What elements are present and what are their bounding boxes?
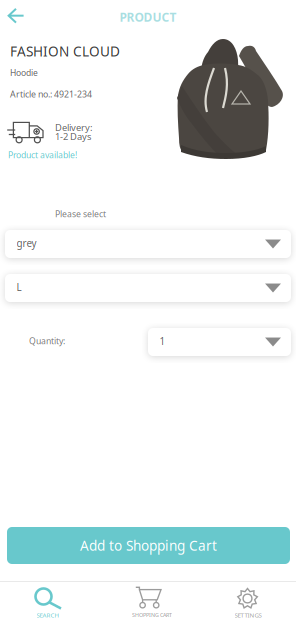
staticText: Please select xyxy=(55,208,106,220)
button[interactable]: SHOPPING CART xyxy=(97,583,201,626)
button[interactable]: L xyxy=(5,274,291,302)
staticText: Hoodie xyxy=(10,67,38,79)
staticText: grey xyxy=(16,236,36,250)
staticText: SETTINGS xyxy=(234,611,261,619)
staticText: 1 xyxy=(159,334,165,348)
staticText: Article no.: 4921-234 xyxy=(10,88,92,100)
button[interactable]: SEARCH xyxy=(0,583,96,626)
button[interactable]: grey xyxy=(5,230,291,258)
staticText: Add to Shopping Cart xyxy=(80,536,217,555)
staticText: PRODUCT xyxy=(119,9,176,25)
staticText: Product available! xyxy=(8,149,77,161)
button[interactable]: Back xyxy=(0,1,32,31)
staticText: Quantity: xyxy=(29,335,65,347)
button[interactable]: Add to Shopping Cart xyxy=(7,527,290,564)
staticText: Delivery: xyxy=(55,121,93,134)
staticText: 1-2 Days xyxy=(55,130,91,143)
staticText: FASHION CLOUD xyxy=(10,42,120,60)
staticText: L xyxy=(16,280,21,294)
button[interactable]: SETTINGS xyxy=(201,583,295,626)
staticText: SEARCH xyxy=(36,611,59,619)
button[interactable]: 1 xyxy=(148,328,291,356)
staticText: SHOPPING CART xyxy=(132,611,172,619)
